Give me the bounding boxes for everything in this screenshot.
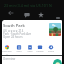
- staticText: Open 24 hours: [3, 35, 23, 39]
- staticText: Nearby: [35, 50, 45, 53]
- staticText: Save: [25, 50, 35, 53]
- button[interactable]: Nearby: [35, 44, 45, 53]
- staticText: Directions: [2, 50, 12, 56]
- staticText: 4.6 ★★★★ 214: [3, 29, 24, 33]
- button[interactable]: Reviews: [24, 12, 30, 18]
- button[interactable]: Save: [38, 12, 44, 18]
- staticText: Park · South Park Ave: [3, 32, 31, 36]
- staticText: 23 min (3.4 mi) via US-101 N: [4, 3, 52, 8]
- button[interactable]: Back: [8, 10, 14, 16]
- staticText: Overview: [3, 57, 16, 61]
- button[interactable]: Photos: [49, 23, 61, 36]
- staticText: Start: [14, 50, 24, 53]
- button[interactable]: Layers: [56, 17, 60, 19]
- button[interactable]: Directions: [2, 44, 12, 53]
- button[interactable]: Save: [25, 44, 35, 53]
- button[interactable]: Directions: [53, 59, 62, 64]
- button[interactable]: Share: [46, 44, 56, 53]
- staticText: South Park: [3, 23, 25, 29]
- staticText: Share: [46, 50, 56, 53]
- button[interactable]: Start: [14, 44, 24, 53]
